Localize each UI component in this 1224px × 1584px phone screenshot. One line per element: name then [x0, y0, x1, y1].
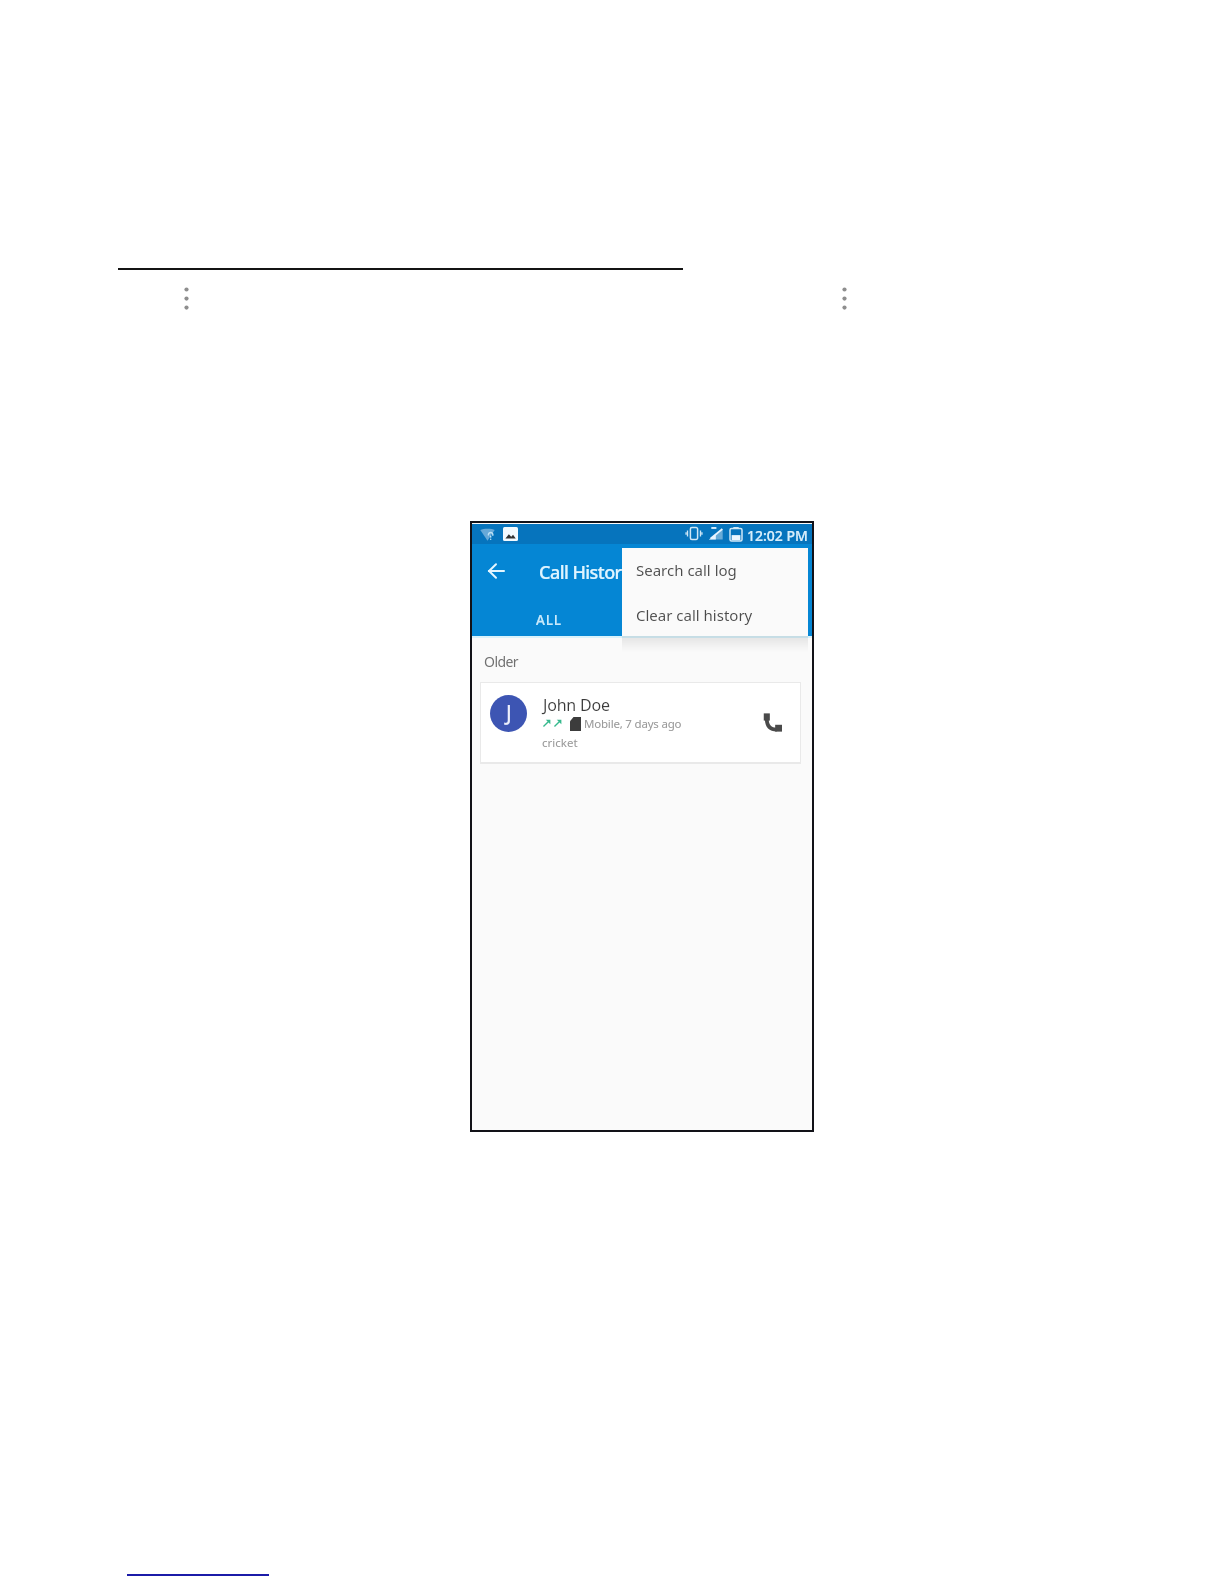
button[interactable]: Back: [480, 555, 512, 587]
staticText: J: [506, 699, 512, 728]
staticText: John Doe: [543, 694, 610, 716]
staticText: Call History: [539, 560, 631, 585]
button[interactable]: ALL: [482, 604, 616, 636]
staticText: Older: [484, 652, 519, 671]
staticText: Mobile, 7 days ago: [584, 716, 682, 732]
staticText: cricket: [542, 735, 578, 751]
button[interactable]: Call: [755, 705, 789, 739]
button[interactable]: Clear call history: [622, 592, 808, 636]
staticText: 12:02 PM: [747, 526, 808, 545]
button[interactable]: Search call log: [622, 548, 808, 592]
button[interactable]: J: [481, 683, 800, 762]
staticText: ALL: [536, 611, 562, 629]
staticText: Clear call history: [636, 605, 753, 625]
staticText: Search call log: [636, 560, 737, 580]
